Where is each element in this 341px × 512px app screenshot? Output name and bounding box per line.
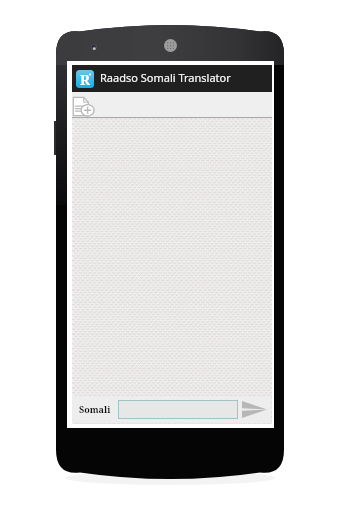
button[interactable]: Send bbox=[241, 398, 268, 420]
button[interactable]: R bbox=[72, 65, 272, 92]
staticText: Raadso Somali Translator bbox=[100, 70, 231, 85]
staticText: Somali bbox=[79, 403, 111, 415]
staticText: R bbox=[80, 70, 90, 88]
button[interactable]: New document bbox=[72, 97, 91, 116]
button[interactable] bbox=[118, 400, 238, 419]
